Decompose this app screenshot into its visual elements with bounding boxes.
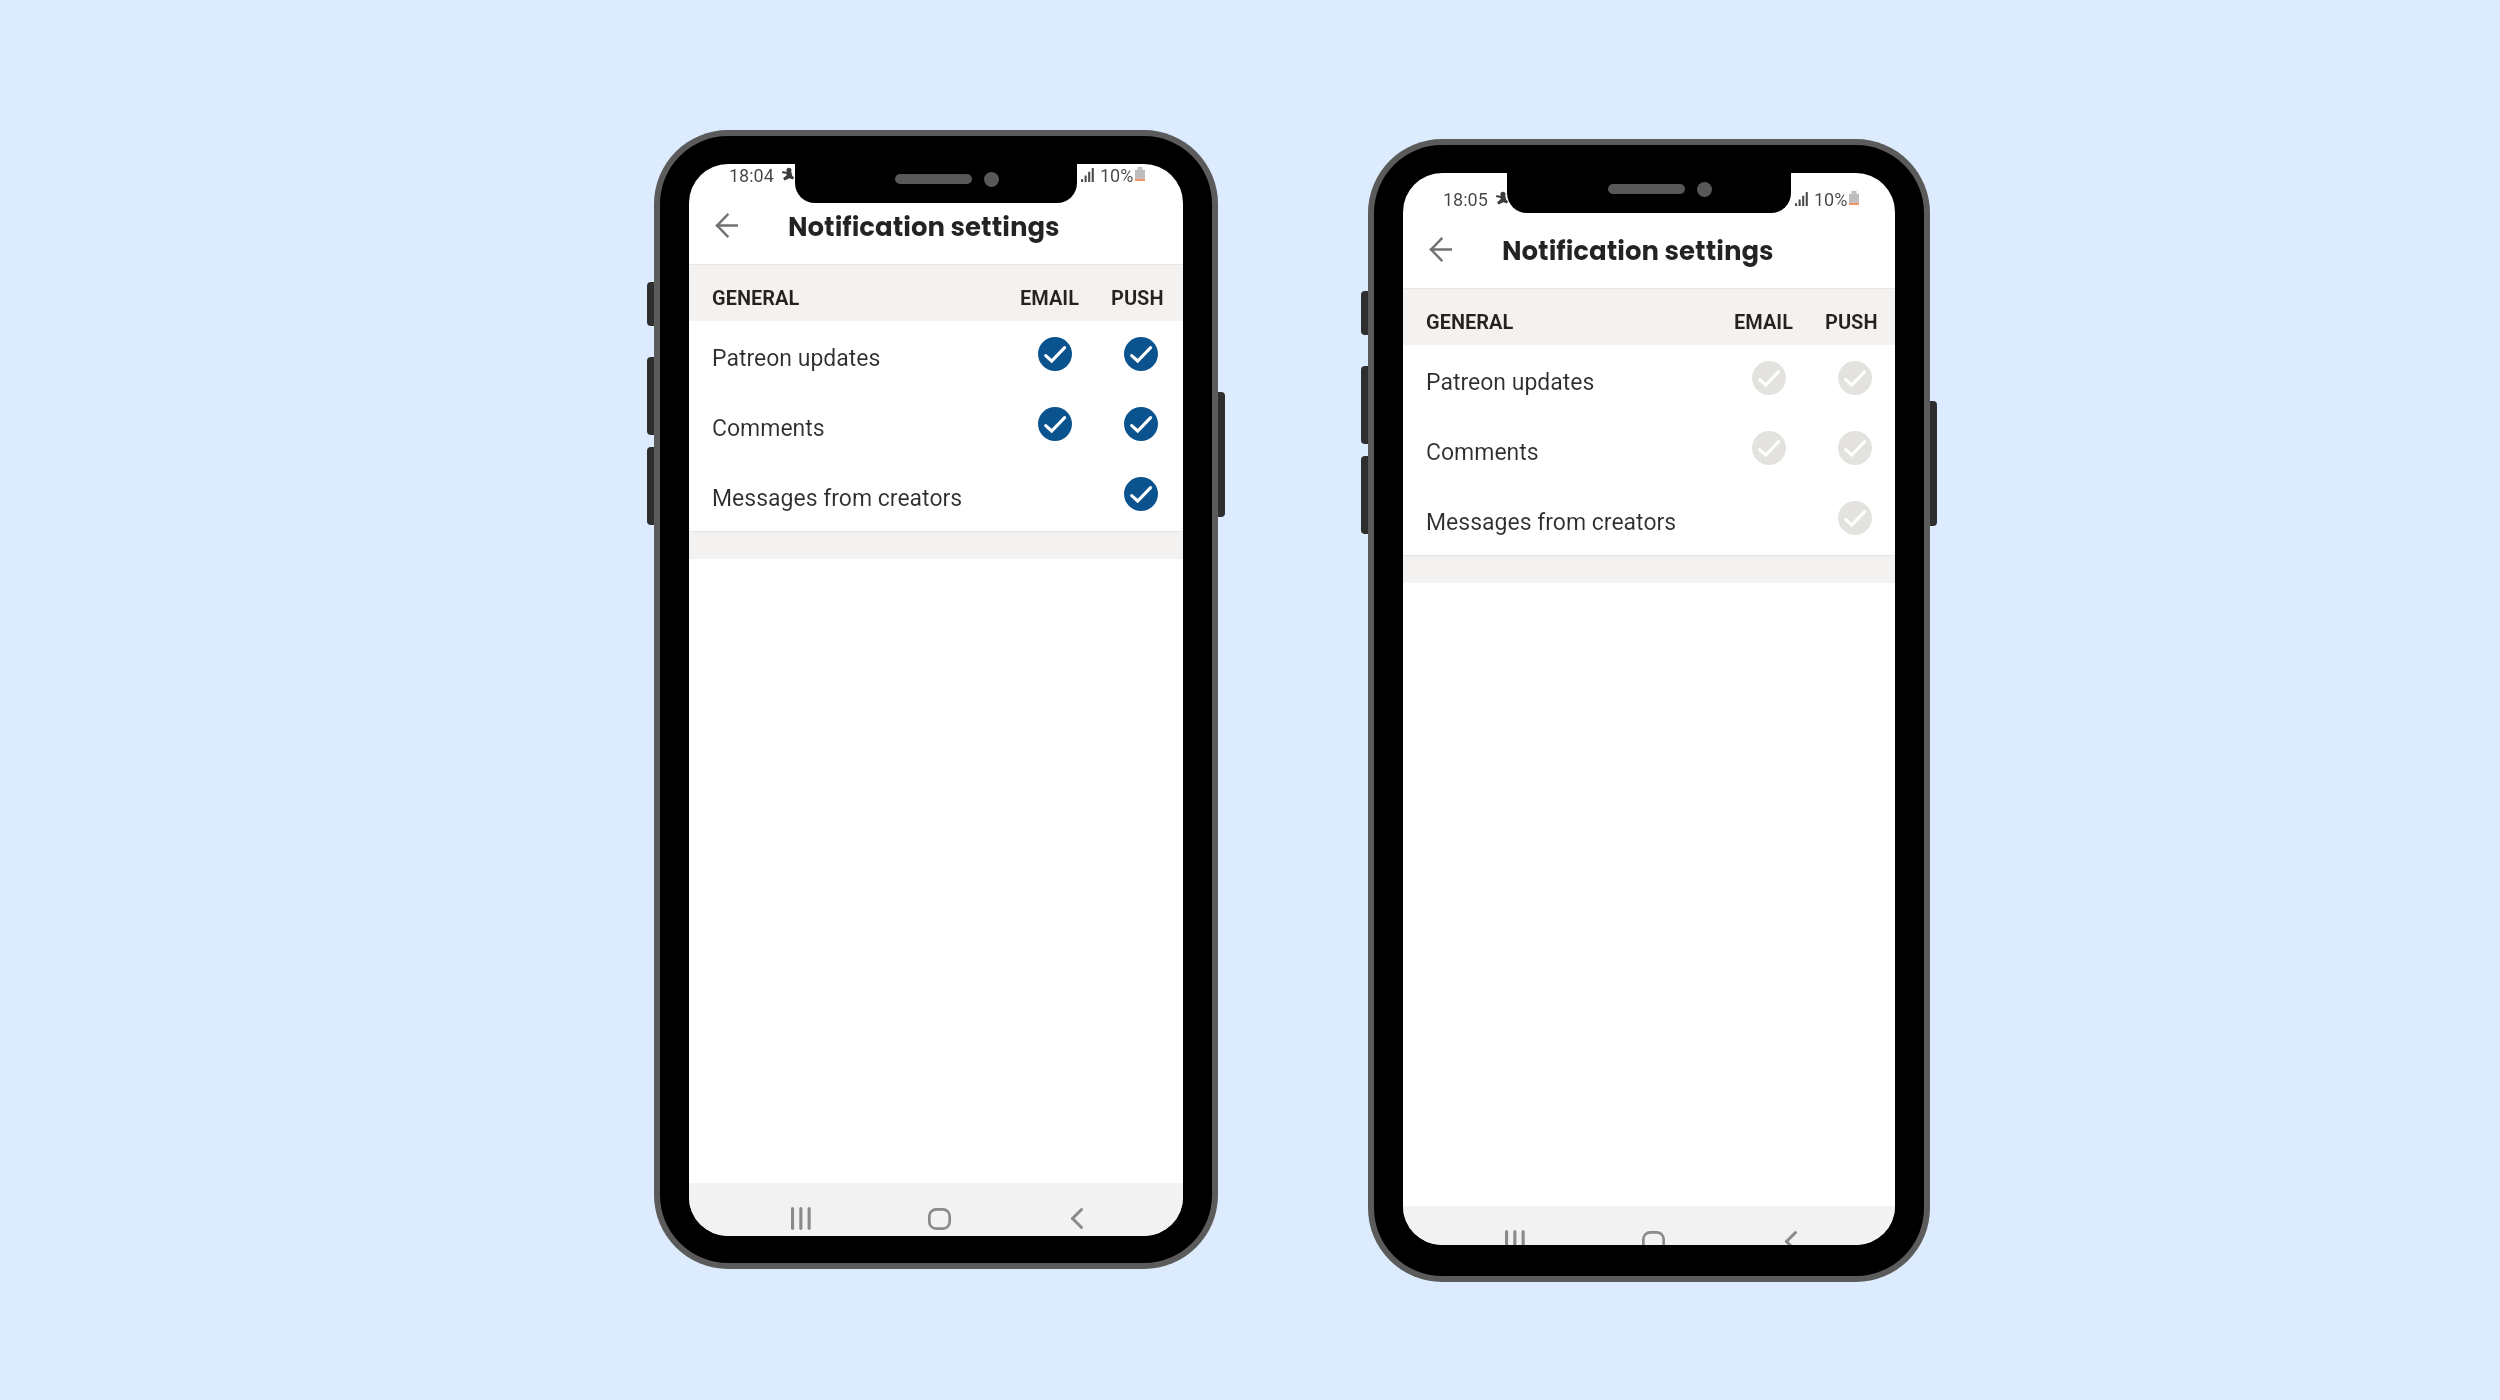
staticText: 18:05 — [1443, 189, 1488, 210]
button[interactable]: Toggle notification — [1838, 501, 1872, 535]
staticText: Messages from creators — [712, 485, 963, 512]
button[interactable]: Back — [1419, 227, 1463, 271]
staticText: 10% — [1814, 189, 1848, 210]
button[interactable]: Messages from creators — [1403, 487, 1895, 557]
button[interactable]: Back — [705, 203, 749, 247]
button[interactable]: Patreon updates — [1403, 347, 1895, 417]
staticText: Comments — [1426, 439, 1539, 466]
button[interactable]: Toggle notification — [1838, 361, 1872, 395]
button[interactable]: Back — [1005, 1192, 1148, 1236]
button[interactable]: Recent apps — [719, 1192, 883, 1236]
staticText: 10% — [1100, 165, 1134, 186]
staticText: GENERAL — [712, 286, 800, 309]
staticText: PUSH — [1111, 286, 1164, 309]
staticText: Notification settings — [788, 209, 1060, 245]
button[interactable]: Home — [1583, 1215, 1723, 1245]
button[interactable]: Toggle notification — [1752, 361, 1786, 395]
button[interactable]: Comments — [1403, 417, 1895, 487]
staticText: GENERAL — [1426, 310, 1514, 333]
button[interactable]: Toggle notification — [1752, 431, 1786, 465]
staticText: Patreon updates — [712, 345, 881, 372]
button[interactable]: Messages from creators — [689, 463, 1183, 533]
staticText: EMAIL — [1020, 286, 1080, 309]
staticText: PUSH — [1825, 310, 1878, 333]
staticText: Patreon updates — [1426, 369, 1595, 396]
staticText: Comments — [712, 415, 825, 442]
button[interactable]: Comments — [689, 393, 1183, 463]
button[interactable]: Back — [1719, 1215, 1862, 1245]
button[interactable]: Toggle notification — [1124, 477, 1158, 511]
button[interactable]: Toggle notification — [1038, 337, 1072, 371]
button[interactable]: Recent apps — [1433, 1215, 1597, 1245]
button[interactable]: Home — [869, 1192, 1009, 1236]
button[interactable]: Toggle notification — [1838, 431, 1872, 465]
staticText: Messages from creators — [1426, 509, 1677, 536]
staticText: Notification settings — [1502, 233, 1774, 269]
staticText: EMAIL — [1734, 310, 1794, 333]
button[interactable]: Toggle notification — [1038, 407, 1072, 441]
staticText: 18:04 — [729, 165, 774, 186]
button[interactable]: Patreon updates — [689, 323, 1183, 393]
button[interactable]: Toggle notification — [1124, 337, 1158, 371]
button[interactable]: Toggle notification — [1124, 407, 1158, 441]
